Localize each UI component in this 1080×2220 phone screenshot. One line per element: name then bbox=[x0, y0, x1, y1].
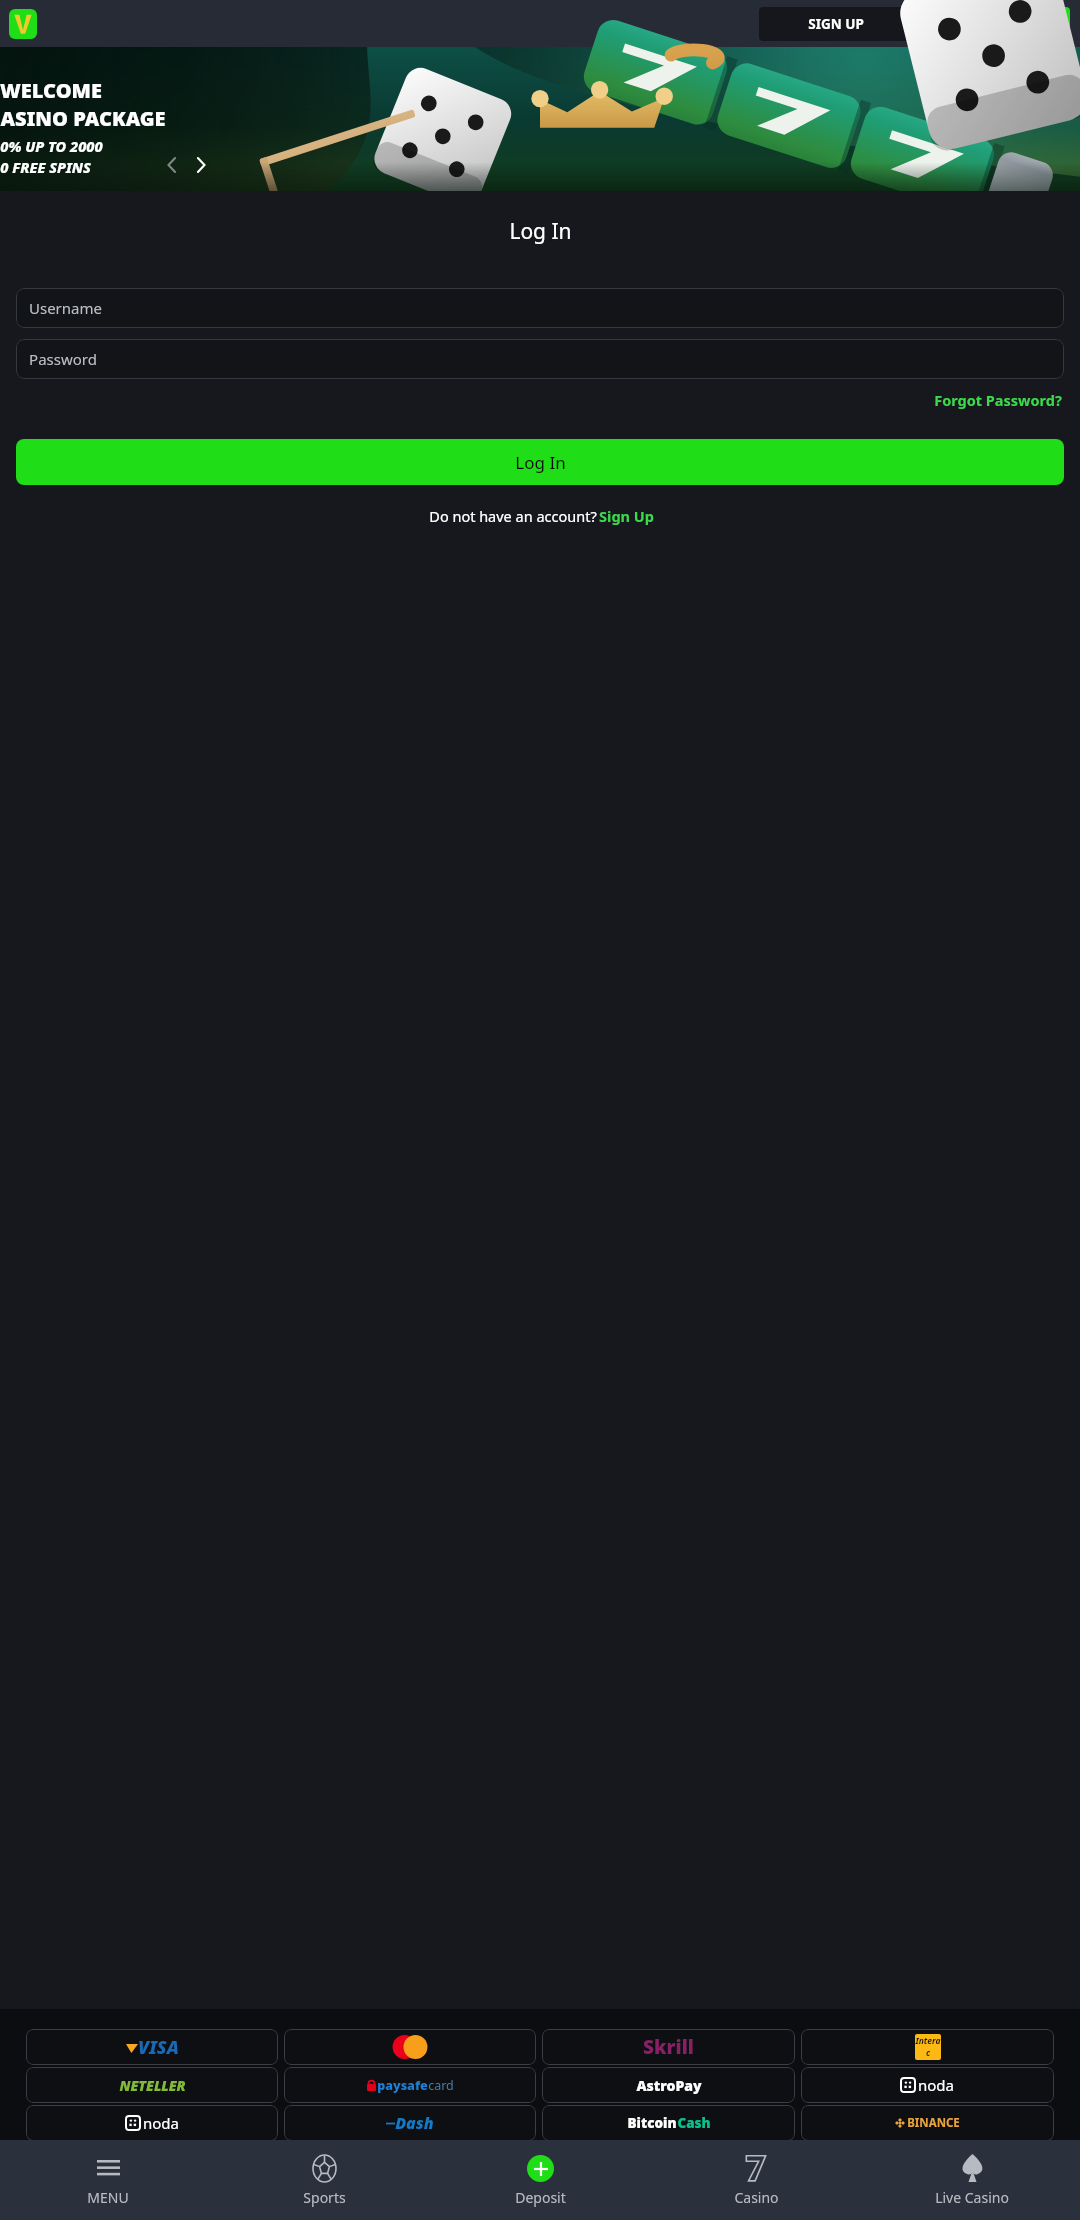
staticText: AstroPay bbox=[636, 2076, 702, 2095]
button[interactable]: paysafe bbox=[284, 2067, 536, 2103]
button[interactable]: bch bbox=[542, 2105, 795, 2141]
button[interactable]: mc bbox=[284, 2029, 536, 2065]
button[interactable]: Deposit bbox=[432, 2140, 648, 2220]
button[interactable]: Forgot Password? bbox=[932, 387, 1064, 413]
other: Deposit bbox=[527, 2155, 554, 2182]
staticText: Interac bbox=[915, 2035, 941, 2059]
staticText: 0% UP TO 2000 bbox=[0, 136, 103, 156]
staticText: paysafe bbox=[377, 2077, 428, 2094]
button[interactable]: Do not have an account? bbox=[423, 504, 658, 528]
staticText: Skrill bbox=[643, 2034, 694, 2060]
staticText: Casino bbox=[734, 2188, 779, 2207]
button[interactable]: skrill bbox=[542, 2029, 795, 2065]
staticText: LOG IN bbox=[970, 15, 1018, 33]
staticText: WELCOME bbox=[0, 77, 102, 104]
staticText: Sign Up bbox=[599, 506, 654, 526]
staticText: Dash bbox=[395, 2112, 434, 2134]
button[interactable]: dash bbox=[284, 2105, 536, 2141]
button[interactable]: Next slide bbox=[187, 151, 215, 179]
button[interactable]: astropay bbox=[542, 2067, 795, 2103]
staticText: Live Casino bbox=[935, 2188, 1009, 2207]
button[interactable]: noda bbox=[26, 2105, 278, 2141]
button[interactable]: Sports bbox=[216, 2140, 432, 2220]
button[interactable]: Live Casino bbox=[864, 2140, 1080, 2220]
staticText: VISA bbox=[138, 2035, 179, 2060]
button[interactable]: visa bbox=[26, 2029, 278, 2065]
button[interactable]: LOG IN bbox=[917, 7, 1070, 41]
staticText: SIGN UP bbox=[808, 15, 864, 33]
staticText: Log In bbox=[509, 217, 572, 246]
staticText: Bitcoin bbox=[627, 2114, 677, 2132]
button[interactable]: binance bbox=[801, 2105, 1054, 2141]
button[interactable]: Home bbox=[9, 9, 37, 39]
staticText: MENU bbox=[87, 2188, 129, 2207]
staticText: Deposit bbox=[515, 2188, 566, 2207]
button[interactable]: SIGN UP bbox=[759, 7, 912, 41]
staticText: Log In bbox=[515, 451, 566, 474]
staticText: Username bbox=[29, 298, 102, 318]
staticText: Sports bbox=[303, 2188, 346, 2207]
button[interactable]: usdt bbox=[777, 2143, 1005, 2179]
staticText: ASINO PACKAGE bbox=[0, 105, 166, 132]
staticText: Cash bbox=[677, 2114, 711, 2132]
button[interactable]: Password bbox=[16, 339, 1064, 379]
staticText: BINANCE bbox=[907, 2115, 960, 2131]
staticText: Password bbox=[29, 349, 97, 369]
button[interactable]: Previous slide bbox=[158, 151, 186, 179]
button[interactable]: eth bbox=[543, 2143, 771, 2179]
button[interactable]: Log In bbox=[16, 439, 1064, 485]
staticText: NETELLER bbox=[119, 2076, 186, 2095]
staticText: Do not have an account? bbox=[427, 506, 599, 526]
staticText: noda bbox=[918, 2075, 954, 2095]
button[interactable]: noda bbox=[801, 2067, 1054, 2103]
button[interactable]: interac bbox=[801, 2029, 1054, 2065]
staticText: 0 FREE SPINS bbox=[0, 157, 91, 177]
staticText: card bbox=[428, 2077, 454, 2094]
button[interactable]: xrp bbox=[309, 2143, 537, 2179]
staticText: noda bbox=[143, 2113, 179, 2133]
button[interactable]: btc bbox=[75, 2143, 303, 2179]
button[interactable]: neteller bbox=[26, 2067, 278, 2103]
button[interactable]: Casino bbox=[648, 2140, 864, 2220]
button[interactable]: Username bbox=[16, 288, 1064, 328]
staticText: Forgot Password? bbox=[934, 390, 1062, 410]
button[interactable]: MENU bbox=[0, 2140, 216, 2220]
